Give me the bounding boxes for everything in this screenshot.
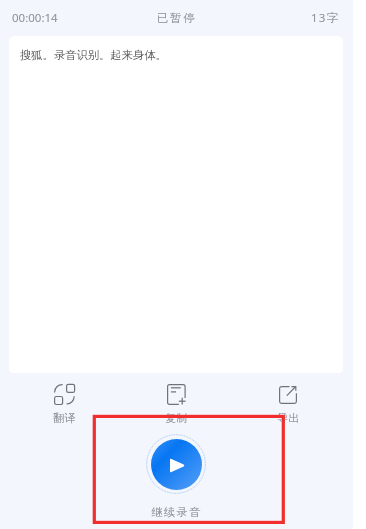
button[interactable]: 导出 [232,384,344,425]
staticText: 搜狐。录音识别。起来身体。 [20,48,167,62]
staticText: 00:00:14 [12,10,58,26]
button[interactable]: 搜狐。录音识别。起来身体。 [9,36,343,373]
staticText: 导出 [277,411,300,425]
button[interactable]: 翻译 [9,384,120,425]
staticText: 翻译 [53,411,76,425]
staticText: 13字 [311,10,340,26]
staticText: 复制 [165,411,188,425]
button[interactable]: 复制 [120,384,232,425]
staticText: 已暂停 [157,11,197,25]
button[interactable]: 继续录音 [146,434,206,494]
staticText: 继续录音 [0,505,353,519]
